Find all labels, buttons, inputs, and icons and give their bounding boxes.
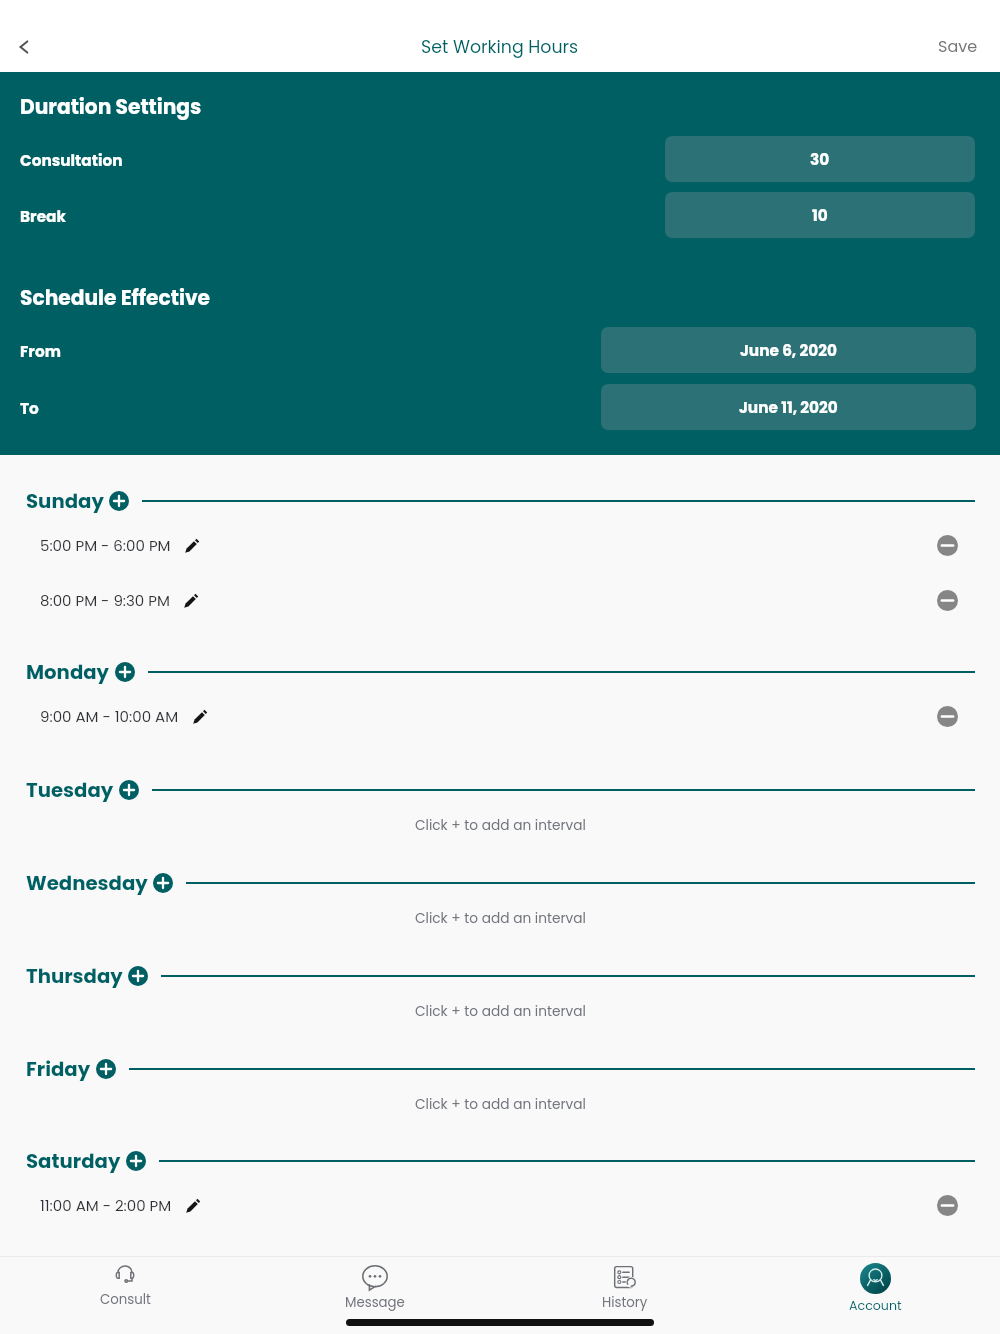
staticText: From — [20, 341, 61, 362]
staticText: 8:00 PM - 9:30 PM — [40, 590, 170, 611]
staticText: Click + to add an interval — [415, 1095, 586, 1114]
staticText: Click + to add an interval — [415, 1002, 586, 1021]
button[interactable]: 9:00 AM - 10:00 AM — [40, 689, 958, 744]
button[interactable]: 5:00 PM - 6:00 PM — [40, 518, 958, 573]
staticText: Consult — [100, 1290, 151, 1309]
button[interactable]: June 6, 2020 — [601, 327, 976, 373]
staticText: Thursday — [26, 962, 123, 990]
staticText: Account — [849, 1297, 902, 1315]
button[interactable]: Add interval for Sunday — [109, 491, 129, 511]
other: Account — [860, 1263, 891, 1294]
staticText: 9:00 AM - 10:00 AM — [40, 706, 179, 727]
staticText: 11:00 AM - 2:00 PM — [40, 1195, 172, 1216]
button[interactable]: June 11, 2020 — [601, 384, 976, 430]
staticText: June 11, 2020 — [739, 397, 838, 418]
button[interactable]: Add interval for Saturday — [126, 1151, 146, 1171]
staticText: History — [602, 1293, 648, 1312]
button[interactable]: Edit 9:00 AM - 10:00 AM — [192, 709, 208, 725]
button[interactable]: Add interval for Wednesday — [153, 873, 173, 893]
button[interactable]: Account — [750, 1256, 1000, 1334]
button[interactable]: Save — [938, 35, 978, 57]
button[interactable]: Add interval for Thursday — [128, 966, 148, 986]
button[interactable]: Message — [250, 1256, 500, 1334]
staticText: Message — [345, 1293, 405, 1312]
button[interactable]: Edit 5:00 PM - 6:00 PM — [184, 538, 200, 554]
staticText: Tuesday — [26, 776, 114, 804]
staticText: 5:00 PM - 6:00 PM — [40, 535, 171, 556]
staticText: Sunday — [26, 487, 104, 515]
button[interactable]: Add interval for Monday — [115, 662, 135, 682]
staticText: Consultation — [20, 150, 123, 171]
button[interactable]: 8:00 PM - 9:30 PM — [40, 573, 958, 628]
staticText: Click + to add an interval — [415, 909, 586, 928]
button[interactable]: Remove 5:00 PM - 6:00 PM — [937, 535, 958, 556]
staticText: 10 — [812, 205, 828, 226]
button[interactable]: 30 — [665, 136, 975, 182]
button[interactable]: Remove 11:00 AM - 2:00 PM — [937, 1195, 958, 1216]
staticText: Break — [20, 206, 66, 227]
button[interactable]: 10 — [665, 192, 975, 238]
button[interactable]: Edit 8:00 PM - 9:30 PM — [183, 593, 199, 609]
staticText: Saturday — [26, 1147, 121, 1175]
staticText: To — [20, 398, 39, 419]
button[interactable]: Remove 8:00 PM - 9:30 PM — [937, 590, 958, 611]
staticText: Set Working Hours — [421, 35, 579, 59]
staticText: Click + to add an interval — [415, 816, 586, 835]
staticText: Wednesday — [26, 869, 148, 897]
staticText: Schedule Effective — [20, 284, 210, 312]
staticText: Duration Settings — [20, 93, 202, 121]
button[interactable]: Edit 11:00 AM - 2:00 PM — [185, 1198, 201, 1214]
staticText: June 6, 2020 — [740, 340, 837, 361]
button[interactable]: History — [500, 1256, 750, 1334]
staticText: Save — [938, 35, 978, 57]
staticText: Friday — [26, 1055, 91, 1083]
button[interactable]: Add interval for Friday — [96, 1059, 116, 1079]
button[interactable]: 11:00 AM - 2:00 PM — [40, 1178, 958, 1233]
button[interactable]: Add interval for Tuesday — [119, 780, 139, 800]
staticText: Monday — [26, 658, 110, 686]
button[interactable]: Back — [0, 23, 48, 71]
staticText: 30 — [810, 149, 830, 170]
button[interactable]: Consult — [0, 1256, 250, 1334]
button[interactable]: Remove 9:00 AM - 10:00 AM — [937, 706, 958, 727]
